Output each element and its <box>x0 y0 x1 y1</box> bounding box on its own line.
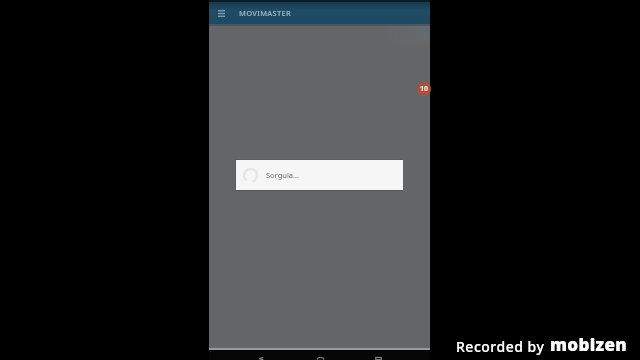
button[interactable]: Back <box>255 357 267 360</box>
staticText: 10 <box>420 84 429 94</box>
button[interactable]: Unread notifications <box>417 82 431 96</box>
button[interactable]: Recent apps <box>372 357 384 360</box>
button[interactable]: Open navigation menu <box>214 6 228 20</box>
staticText: MOVIMASTER <box>239 8 292 18</box>
staticText: Sorgula... <box>266 170 300 180</box>
staticText: Recorded by <box>456 337 545 356</box>
button[interactable]: Home <box>314 357 326 360</box>
staticText: mobizen <box>550 333 627 356</box>
button[interactable]: Sorgula... <box>236 160 403 190</box>
